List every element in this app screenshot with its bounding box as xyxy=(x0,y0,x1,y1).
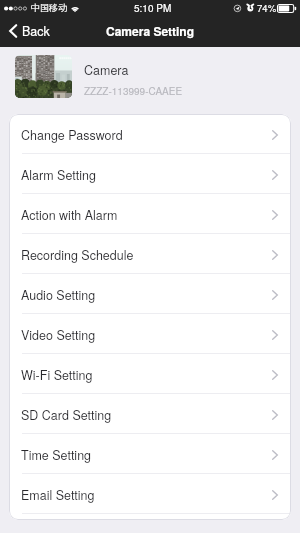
staticText: Action with Alarm xyxy=(21,206,118,224)
staticText: Wi-Fi Setting xyxy=(21,366,93,384)
staticText: Email Setting xyxy=(21,486,95,504)
button[interactable]: Audio Setting xyxy=(9,274,291,314)
staticText: Camera xyxy=(84,61,129,79)
staticText: 5:10 PM xyxy=(134,1,172,15)
button[interactable]: Change Password xyxy=(9,114,291,154)
staticText: SD Card Setting xyxy=(21,406,112,424)
staticText: Camera Setting xyxy=(106,22,195,39)
button[interactable]: SD Card Setting xyxy=(9,394,291,434)
staticText: Change Password xyxy=(21,126,123,144)
staticText: Audio Setting xyxy=(21,286,96,304)
button[interactable]: Recording Schedule xyxy=(9,234,291,274)
button[interactable]: Camera xyxy=(0,47,300,105)
staticText: Back xyxy=(22,22,50,40)
button[interactable]: Time Setting xyxy=(9,434,291,474)
button[interactable]: Alarm Setting xyxy=(9,154,291,194)
staticText: Time Setting xyxy=(21,446,92,464)
button[interactable]: Email Setting xyxy=(9,474,291,514)
button[interactable]: Wi-Fi Setting xyxy=(9,354,291,394)
button[interactable]: Video Setting xyxy=(9,314,291,354)
staticText: 74% xyxy=(257,1,277,15)
button[interactable]: Action with Alarm xyxy=(9,194,291,234)
staticText: ZZZZ-113999-CAAEE xyxy=(84,84,183,98)
button[interactable]: Back xyxy=(0,16,60,46)
staticText: Video Setting xyxy=(21,326,96,344)
staticText: 中国移动 xyxy=(31,2,67,13)
staticText: Recording Schedule xyxy=(21,246,134,264)
staticText: Alarm Setting xyxy=(21,166,96,184)
